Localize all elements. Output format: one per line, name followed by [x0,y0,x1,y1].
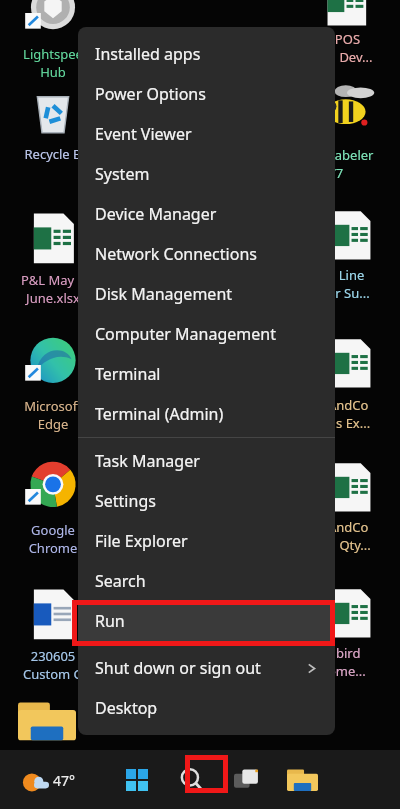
button[interactable]: Task view [225,758,269,802]
button[interactable]: 230605 [10,586,96,683]
staticText: n Qty... [328,536,400,554]
staticText: Labeler [328,146,400,164]
staticText: 230605 [10,647,96,665]
staticText: : POS [328,30,400,48]
staticText: Desktop [95,697,158,719]
button[interactable]: Weather, 47 degrees [22,765,76,795]
staticText: er Su... [328,284,400,302]
staticText: e Line [328,266,400,284]
button[interactable]: Network Connections [78,234,335,274]
staticText: Terminal (Admin) [95,403,224,425]
button[interactable]: Recycle B [10,84,96,163]
button[interactable]: Settings [78,481,335,521]
staticText: Disk Management [95,283,233,305]
button[interactable]: Terminal [78,354,335,394]
staticText: Terminal [95,363,161,385]
staticText: V7 [328,164,400,182]
button[interactable]: Lightspee [10,0,96,81]
staticText: June.xlsx [10,289,96,307]
button[interactable]: Power Options [78,74,335,114]
button[interactable]: P&L May a [10,210,96,307]
button[interactable]: Google [10,460,96,557]
button[interactable]: Desktop [78,688,335,728]
button[interactable]: Task Manager [78,441,335,481]
staticText: File Explorer [95,530,188,552]
button[interactable]: Search [78,561,335,601]
button[interactable]: Computer Management [78,314,335,354]
staticText: Recycle B [10,145,96,163]
staticText: AndCo [328,518,400,536]
staticText: Chrome [10,539,96,557]
staticText: Event Viewer [95,123,192,145]
staticText: 47° [53,771,76,790]
button[interactable]: Event Viewer [78,114,335,154]
staticText: ns Ex... [328,414,400,432]
staticText: Lightspee [10,45,96,63]
staticText: System [95,163,150,185]
button[interactable]: System [78,154,335,194]
staticText: Google [10,521,96,539]
staticText: Task Manager [95,450,200,472]
staticText: Custom G [10,665,96,683]
button[interactable]: Run [78,601,335,641]
button[interactable]: Disk Management [78,274,335,314]
button[interactable]: Search [170,758,214,802]
staticText: dbird [328,644,400,662]
staticText: AndCo [328,396,400,414]
button[interactable]: Microsoft [10,336,96,433]
staticText: Hub [10,63,96,81]
staticText: Device Manager [95,203,217,225]
button[interactable]: Terminal (Admin) [78,394,335,434]
staticText: Run [95,610,125,632]
staticText: P&L May a [10,271,96,289]
button[interactable]: Device Manager [78,194,335,234]
staticText: g Dev... [328,48,400,66]
staticText: Settings [95,490,156,512]
staticText: ome... [328,662,400,680]
staticText: Edge [10,415,96,433]
staticText: Network Connections [95,243,257,265]
staticText: Microsoft [10,397,96,415]
button[interactable]: Installed apps [78,34,335,74]
staticText: Computer Management [95,323,276,345]
staticText: Power Options [95,83,206,105]
button[interactable]: File Explorer [78,521,335,561]
staticText: Installed apps [95,43,201,65]
button[interactable]: File Explorer [280,758,324,802]
staticText: Search [95,570,146,592]
staticText: Shut down or sign out [95,657,261,679]
button[interactable]: Shut down or sign out [78,648,335,688]
button[interactable]: Start [115,758,159,802]
